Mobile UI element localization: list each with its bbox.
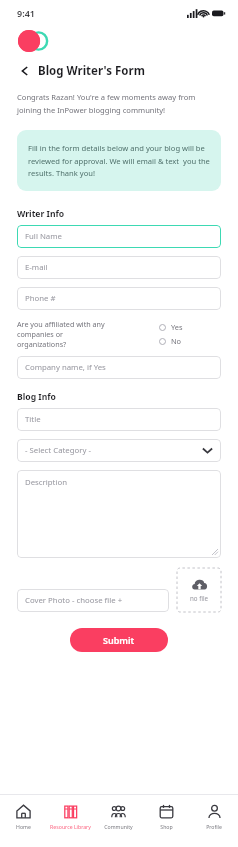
button[interactable]: Company name, if Yes bbox=[17, 356, 221, 379]
staticText: Yes bbox=[171, 322, 183, 332]
staticText: Resource Library bbox=[50, 823, 91, 830]
staticText: Blog Info bbox=[17, 391, 56, 403]
staticText: Writer Info bbox=[17, 208, 65, 220]
button[interactable]: Upload cover photo bbox=[177, 568, 221, 612]
staticText: Are you affiliated with any companies or… bbox=[17, 319, 110, 349]
button[interactable]: Shop bbox=[142, 795, 190, 847]
button[interactable]: - Select Category - bbox=[17, 439, 221, 462]
button[interactable]: Full Name bbox=[17, 225, 221, 248]
staticText: Congrats Razan! You're a few moments awa… bbox=[17, 92, 221, 115]
button[interactable]: Community bbox=[94, 795, 142, 847]
staticText: Phone # bbox=[25, 293, 56, 304]
button[interactable]: Submit bbox=[70, 628, 168, 652]
staticText: Submit bbox=[103, 634, 135, 646]
button[interactable]: Description bbox=[17, 470, 221, 558]
staticText: Home bbox=[16, 823, 31, 830]
staticText: Community bbox=[104, 823, 133, 830]
button[interactable]: No bbox=[159, 336, 182, 346]
staticText: E-mail bbox=[25, 262, 48, 273]
button[interactable]: Profile bbox=[190, 795, 238, 847]
staticText: Company name, if Yes bbox=[25, 362, 106, 373]
staticText: no file bbox=[190, 594, 208, 602]
button[interactable]: E-mail bbox=[17, 256, 221, 279]
button[interactable]: Back bbox=[17, 63, 33, 79]
staticText: Description bbox=[25, 477, 67, 488]
staticText: Title bbox=[25, 414, 41, 425]
staticText: - Select Category - bbox=[25, 445, 91, 456]
staticText: Cover Photo - choose file + bbox=[25, 595, 123, 606]
staticText: Profile bbox=[206, 823, 222, 830]
button[interactable]: Home bbox=[0, 795, 47, 847]
button[interactable]: Yes bbox=[159, 322, 183, 332]
staticText: Blog Writer's Form bbox=[38, 63, 145, 79]
button[interactable]: Resource Library bbox=[47, 795, 94, 847]
staticText: 9:41 bbox=[17, 7, 35, 19]
button[interactable]: Title bbox=[17, 408, 221, 431]
staticText: Fill in the form details below and your … bbox=[28, 143, 210, 178]
staticText: No bbox=[171, 336, 182, 346]
staticText: Full Name bbox=[25, 231, 62, 242]
button[interactable]: Phone # bbox=[17, 287, 221, 310]
button[interactable]: Cover Photo - choose file + bbox=[17, 589, 169, 612]
staticText: Shop bbox=[160, 823, 173, 830]
